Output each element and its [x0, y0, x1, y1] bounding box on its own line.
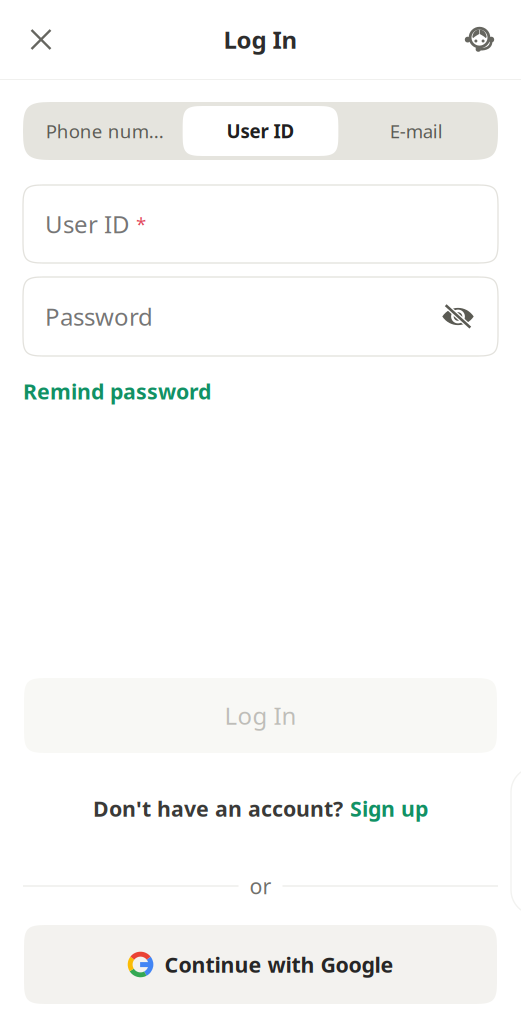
- staticText: E-mail: [390, 119, 443, 143]
- staticText: Remind password: [23, 377, 211, 405]
- staticText: Don't have an account?: [93, 794, 343, 823]
- staticText: User ID: [45, 208, 130, 240]
- button[interactable]: Phone num...: [27, 106, 183, 156]
- button[interactable]: Log In: [24, 678, 497, 753]
- staticText: Sign up: [350, 794, 428, 823]
- staticText: Password: [45, 301, 153, 332]
- button[interactable]: Show password: [438, 296, 478, 336]
- staticText: *: [136, 212, 146, 236]
- button[interactable]: Support: [458, 17, 502, 61]
- button[interactable]: User ID: [183, 106, 338, 156]
- staticText: Phone num...: [46, 119, 164, 143]
- staticText: User ID: [226, 119, 294, 143]
- staticText: Log In: [224, 700, 296, 731]
- staticText: or: [249, 872, 271, 900]
- button[interactable]: E-mail: [338, 106, 494, 156]
- button[interactable]: Remind password: [23, 367, 211, 415]
- button[interactable]: Continue with Google: [24, 925, 497, 1004]
- button[interactable]: Don't have an account?: [0, 753, 521, 864]
- button[interactable]: Close: [19, 17, 63, 61]
- staticText: Log In: [223, 24, 297, 55]
- staticText: Continue with Google: [164, 950, 393, 979]
